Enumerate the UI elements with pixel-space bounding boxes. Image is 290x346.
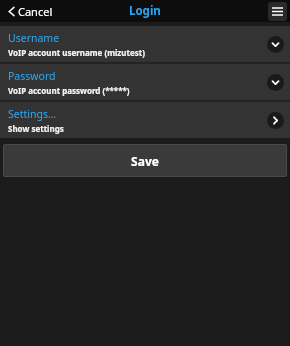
button[interactable]: Settings... <box>0 102 290 138</box>
staticText: VoIP account password (*****) <box>8 85 130 96</box>
staticText: Settings... <box>8 107 57 121</box>
staticText: Password <box>8 69 56 83</box>
button[interactable]: Username <box>0 26 290 62</box>
staticText: Username <box>8 31 60 45</box>
button[interactable]: Save <box>3 144 287 177</box>
staticText: Cancel <box>18 4 53 19</box>
button[interactable]: Menu <box>268 2 287 21</box>
staticText: VoIP account username (mizutest) <box>8 47 145 58</box>
button[interactable]: Cancel <box>6 2 55 21</box>
button[interactable]: Password <box>0 64 290 100</box>
staticText: Login <box>129 3 161 19</box>
staticText: Show settings <box>8 123 64 134</box>
staticText: Save <box>131 153 159 169</box>
